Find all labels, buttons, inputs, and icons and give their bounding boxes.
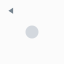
button[interactable]: Back	[0, 0, 64, 64]
